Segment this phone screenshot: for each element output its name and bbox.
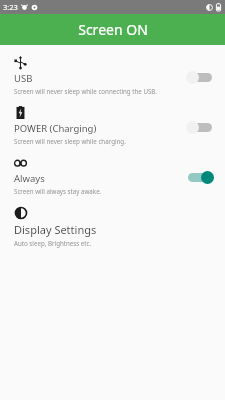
- staticText: Screen will never sleep while connecting…: [14, 87, 157, 95]
- other: USB: [14, 56, 27, 69]
- other: Display settings: [14, 206, 27, 219]
- other: Always: [14, 156, 27, 169]
- staticText: USB: [14, 72, 33, 85]
- staticText: Screen will never sleep while charging.: [14, 137, 126, 145]
- staticText: POWER (Charging): [14, 122, 97, 135]
- button[interactable]: Display settings: [0, 203, 225, 253]
- other: Power charging: [14, 106, 27, 119]
- button[interactable]: Power charging: [0, 103, 225, 153]
- button[interactable]: USB toggle: [183, 67, 217, 87]
- staticText: Always: [14, 172, 45, 185]
- staticText: Screen ON: [78, 20, 148, 39]
- staticText: Display Settings: [14, 222, 97, 237]
- staticText: Auto sleep, Brightness etc.: [14, 239, 92, 247]
- button[interactable]: USB: [0, 53, 225, 103]
- button[interactable]: Always toggle: [183, 167, 217, 187]
- button[interactable]: POWER (Charging) toggle: [183, 117, 217, 137]
- staticText: 3:23: [3, 2, 18, 12]
- staticText: Screen will always stay awake.: [14, 187, 102, 195]
- button[interactable]: Always: [0, 153, 225, 203]
